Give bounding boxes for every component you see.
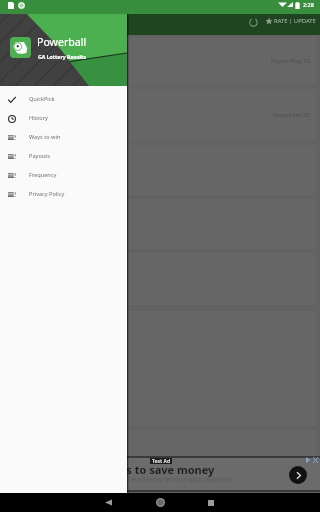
staticText: GA Lottery Results — [38, 53, 86, 60]
button[interactable]: History — [0, 109, 127, 128]
staticText: Save Money on Your Auto Insurance — [128, 475, 233, 483]
button[interactable] — [4, 430, 316, 460]
staticText: Ways to win — [29, 133, 61, 141]
staticText: Frequency — [29, 171, 57, 179]
button[interactable] — [4, 199, 316, 249]
button[interactable]: Open ad — [289, 466, 307, 484]
button[interactable]: Recents — [201, 493, 220, 512]
staticText: Megaplier X2 — [273, 111, 311, 119]
staticText: Powerball — [37, 35, 87, 49]
button[interactable]: Power Play X2 — [4, 37, 316, 85]
staticText: QuickPick — [29, 95, 55, 103]
staticText: Test Ad — [152, 458, 171, 464]
button[interactable]: ways to save money — [0, 456, 320, 491]
staticText: Power Play X2 — [271, 57, 311, 65]
staticText: ways to save money — [104, 462, 215, 477]
staticText: History — [29, 114, 48, 122]
button[interactable]: Home — [151, 493, 170, 512]
staticText: Privacy Policy — [29, 190, 65, 198]
button[interactable]: Privacy Policy — [0, 185, 127, 204]
button[interactable]: Ways to win — [0, 128, 127, 147]
button[interactable]: Payouts — [0, 147, 127, 166]
staticText: 2:28 — [303, 1, 314, 8]
button[interactable] — [4, 311, 316, 426]
button[interactable] — [4, 145, 316, 195]
button[interactable]: QuickPick — [0, 90, 127, 109]
button[interactable]: Back — [99, 493, 118, 512]
button[interactable]: Refresh — [246, 15, 261, 30]
button[interactable]: Frequency — [0, 166, 127, 185]
button[interactable] — [4, 253, 316, 305]
staticText: RATE | UPDATE — [274, 17, 316, 25]
staticText: Payouts — [29, 152, 50, 160]
button[interactable]: RATE | UPDATE — [265, 14, 316, 28]
button[interactable]: Megaplier X2 — [4, 89, 316, 141]
